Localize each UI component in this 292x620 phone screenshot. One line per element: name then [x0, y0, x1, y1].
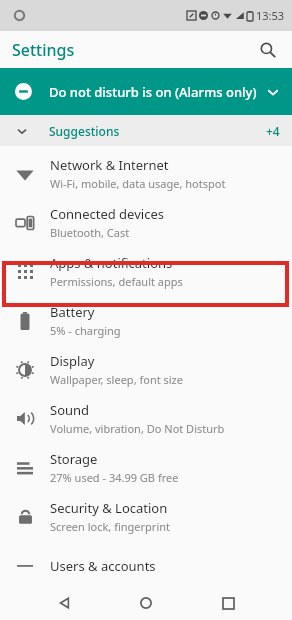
button[interactable]: Suggestions: [0, 115, 292, 146]
button[interactable]: Display: [0, 345, 292, 394]
staticText: Users & accounts: [50, 557, 156, 575]
button[interactable]: Home: [129, 586, 163, 620]
button[interactable]: Back: [48, 586, 82, 620]
button[interactable]: Security & Location: [0, 492, 292, 541]
staticText: Sound: [50, 401, 90, 419]
button[interactable]: Search: [253, 35, 283, 65]
button[interactable]: Recents: [211, 586, 245, 620]
staticText: Battery: [50, 303, 95, 321]
staticText: Do not disturb is on (Alarms only): [49, 83, 257, 101]
staticText: Storage: [50, 450, 98, 468]
staticText: Settings: [12, 39, 75, 61]
staticText: Security & Location: [50, 499, 168, 517]
staticText: 27% used - 34.99 GB free: [50, 470, 179, 485]
button[interactable]: Users & accounts: [0, 541, 292, 590]
button[interactable]: Apps & notifications: [0, 247, 292, 296]
staticText: Network & Internet: [50, 156, 169, 174]
staticText: +4: [266, 123, 280, 139]
staticText: Suggestions: [49, 123, 120, 139]
staticText: Bluetooth, Cast: [50, 225, 130, 240]
staticText: 13:53: [256, 8, 285, 23]
staticText: Permissions, default apps: [50, 274, 183, 289]
button[interactable]: Connected devices: [0, 198, 292, 247]
staticText: Connected devices: [50, 205, 164, 223]
staticText: Screen lock, fingerprint: [50, 519, 171, 534]
staticText: Display: [50, 352, 95, 370]
staticText: 5% - charging: [50, 323, 121, 338]
button[interactable]: Network & Internet: [0, 149, 292, 198]
button[interactable]: Storage: [0, 443, 292, 492]
button[interactable]: Sound: [0, 394, 292, 443]
staticText: Wallpaper, sleep, font size: [50, 372, 183, 387]
staticText: Volume, vibration, Do Not Disturb: [50, 421, 225, 436]
staticText: Apps & notifications: [50, 254, 173, 272]
button[interactable]: Do not disturb is on (Alarms only): [0, 68, 292, 115]
button[interactable]: Battery: [0, 296, 292, 345]
staticText: Wi-Fi, mobile, data usage, hotspot: [50, 176, 226, 191]
